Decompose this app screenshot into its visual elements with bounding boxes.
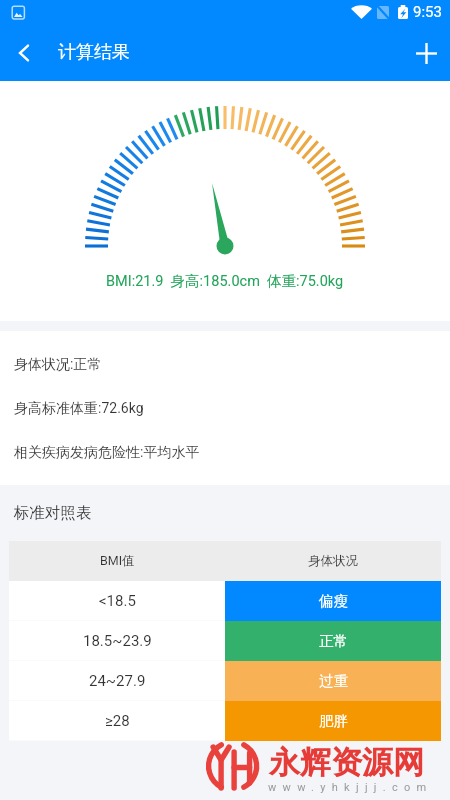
staticText: 计算结果 [58, 41, 130, 64]
staticText: www.yhkjjj.com [268, 781, 433, 794]
staticText: 偏瘦 [319, 592, 348, 610]
staticText: 肥胖 [319, 712, 348, 730]
staticText: 9:53 [413, 3, 442, 21]
staticText: BMI:21.9 身高:185.0cm 体重:75.0kg [106, 272, 344, 290]
staticText: 标准对照表 [14, 503, 92, 523]
staticText: <18.5 [99, 592, 136, 610]
staticText: 身体状况 [308, 553, 358, 569]
staticText: 过重 [319, 672, 348, 690]
staticText: 身高标准体重:72.6kg [14, 400, 144, 418]
staticText: 永辉资源网 [269, 743, 424, 782]
staticText: 正常 [319, 632, 348, 650]
staticText: ≥28 [105, 712, 130, 730]
staticText: 身体状况:正常 [14, 356, 102, 374]
staticText: 24~27.9 [89, 672, 146, 690]
button[interactable]: 返回 [0, 29, 48, 77]
staticText: 18.5~23.9 [83, 632, 152, 650]
staticText: 相关疾病发病危险性:平均水平 [14, 444, 200, 462]
staticText: BMI值 [100, 553, 135, 569]
button[interactable]: 添加 [402, 29, 450, 77]
